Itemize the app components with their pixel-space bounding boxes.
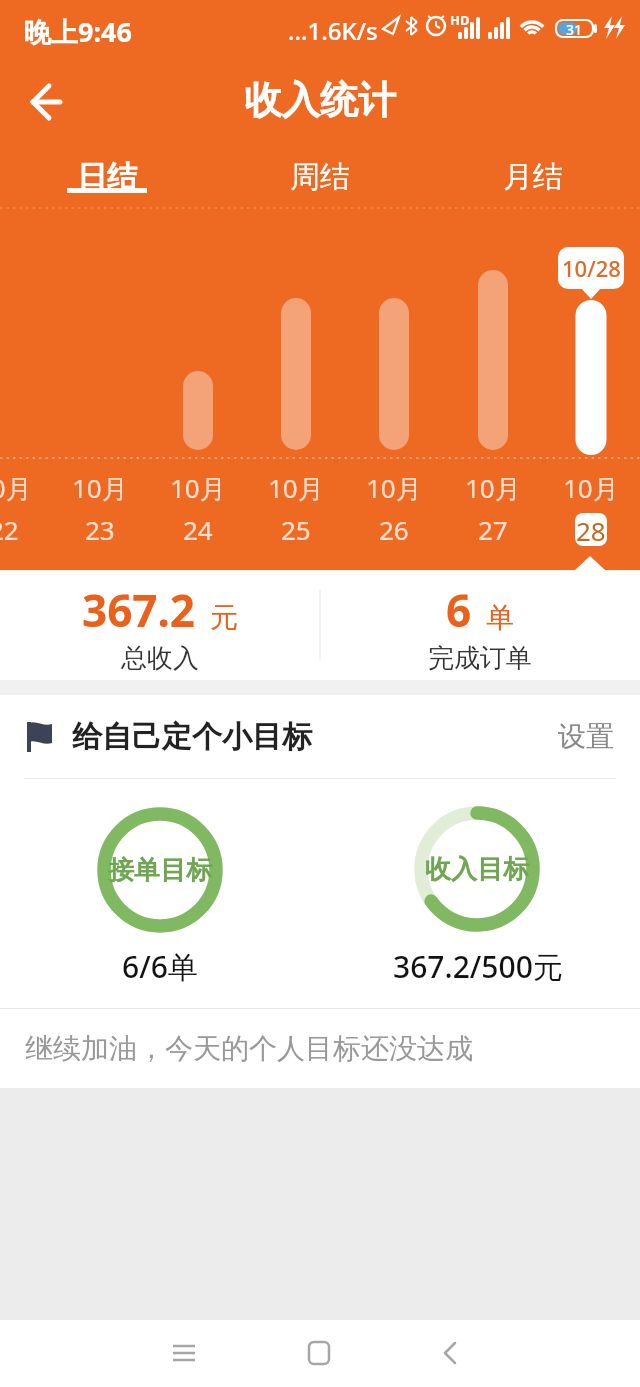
staticText: 10月: [465, 470, 521, 502]
staticText: 31: [566, 20, 583, 39]
staticText: 收入目标: [425, 853, 529, 886]
staticText: 10月: [170, 470, 226, 502]
staticText: ...1.6K/s: [288, 14, 378, 47]
staticText: 10月: [563, 470, 619, 502]
button[interactable]: 接单目标: [83, 793, 237, 947]
staticText: 总收入: [121, 642, 199, 675]
staticText: 6: [446, 580, 472, 640]
staticText: 晚上9:46: [24, 13, 132, 50]
staticText: 周结: [290, 158, 350, 196]
staticText: 10/28: [562, 253, 621, 283]
button[interactable]: [421, 1323, 481, 1383]
staticText: 27: [478, 512, 508, 544]
staticText: 367.2: [82, 580, 196, 640]
staticText: 收入统计: [244, 76, 396, 124]
staticText: 24: [183, 512, 213, 544]
staticText: 23: [85, 512, 115, 544]
staticText: 10月: [268, 470, 324, 502]
staticText: 28: [576, 513, 606, 546]
staticText: 完成订单: [428, 642, 532, 675]
staticText: 10月: [0, 470, 32, 502]
staticText: 25: [281, 512, 311, 544]
staticText: 10月: [366, 470, 422, 502]
button[interactable]: [154, 1323, 214, 1383]
button[interactable]: 6: [320, 570, 640, 680]
staticText: 22: [0, 512, 19, 544]
staticText: 6/6单: [122, 946, 198, 986]
button[interactable]: 日结: [47, 148, 167, 205]
staticText: 继续加油，今天的个人目标还没达成: [25, 1031, 473, 1066]
button[interactable]: 367.2: [0, 570, 320, 680]
button[interactable]: [289, 1323, 349, 1383]
staticText: 元: [210, 600, 238, 635]
staticText: 给自己定个小目标: [72, 718, 312, 756]
staticText: 接单目标: [108, 854, 212, 887]
staticText: 10月: [72, 470, 128, 502]
button[interactable]: 月结: [473, 148, 593, 205]
staticText: 367.2/500元: [393, 946, 563, 986]
staticText: 26: [379, 512, 409, 544]
button[interactable]: [24, 78, 72, 126]
staticText: 单: [486, 600, 514, 635]
staticText: 日结: [77, 158, 137, 196]
button[interactable]: 收入目标: [400, 792, 554, 946]
button[interactable]: 周结: [260, 148, 380, 205]
staticText: HD: [450, 11, 470, 29]
staticText: 月结: [503, 158, 563, 196]
button[interactable]: 设置: [558, 719, 614, 754]
staticText: 设置: [558, 719, 614, 754]
